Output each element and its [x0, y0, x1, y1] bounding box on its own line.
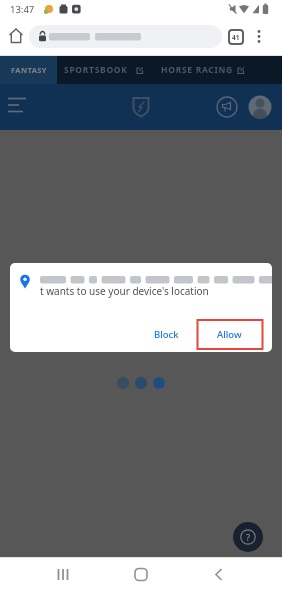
- staticText: 13:47: [10, 3, 35, 16]
- staticText: ?: [246, 531, 251, 543]
- staticText: 41: [232, 33, 240, 42]
- staticText: Block: [154, 328, 179, 341]
- staticText: FANTASY: [11, 65, 47, 75]
- staticText: HORSE RACING: [161, 64, 233, 76]
- staticText: SPORTSBOOK: [64, 64, 128, 76]
- staticText: Allow: [217, 328, 242, 341]
- staticText: t wants to use your device's location: [40, 284, 209, 298]
